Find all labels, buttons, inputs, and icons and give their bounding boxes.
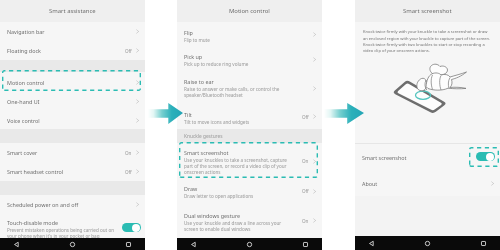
button[interactable]: Home [69, 241, 76, 248]
staticText: Flip to mute [184, 37, 288, 43]
staticText: Pick up [184, 53, 203, 60]
button[interactable]: One-hand UI [0, 92, 145, 111]
staticText: Floating dock [7, 47, 125, 54]
button[interactable]: Recents [480, 240, 487, 247]
staticText: On [125, 150, 132, 156]
staticText: Smart screenshot [184, 149, 229, 156]
button[interactable]: Pick up [177, 47, 322, 72]
button[interactable]: Scheduled power on and off [0, 195, 145, 214]
button[interactable]: Recents [125, 241, 132, 248]
staticText: Draw [184, 185, 198, 192]
staticText: Raise to answer or make calls, or contro… [184, 86, 288, 98]
staticText: Tilt [184, 111, 192, 118]
button[interactable]: Floating dock [0, 41, 145, 60]
staticText: Voice control [7, 117, 134, 124]
staticText: Use your knuckles to take a screenshot, … [184, 157, 288, 175]
staticText: On [302, 158, 309, 164]
button[interactable]: Voice control [0, 111, 145, 129]
staticText: Knock twice firmly with your knuckle to … [363, 29, 493, 53]
staticText: Use your knuckle and draw a line across … [184, 220, 288, 232]
button[interactable]: Smart screenshot [177, 143, 322, 179]
button[interactable]: Motion control [0, 72, 145, 92]
staticText: Off [125, 169, 132, 175]
staticText: Smart screenshot [362, 154, 496, 161]
button[interactable]: Tilt [177, 104, 322, 129]
button[interactable]: Draw [177, 179, 322, 203]
staticText: Off [125, 48, 132, 54]
staticText: One-hand UI [7, 98, 134, 105]
staticText: Raise to ear [184, 78, 214, 85]
button[interactable]: Touch-disable mode [0, 214, 145, 238]
staticText: Dual windows gesture [184, 212, 241, 219]
staticText: Off [302, 114, 309, 120]
button[interactable]: Toggle [122, 223, 141, 232]
button[interactable]: Back [13, 241, 20, 248]
staticText: Tilt to move icons and widgets [184, 119, 288, 125]
button[interactable]: Navigation bar [0, 22, 145, 41]
button[interactable]: Toggle [476, 152, 495, 161]
staticText: Draw letter to open applications [184, 193, 288, 199]
button[interactable]: Back [368, 240, 375, 247]
button[interactable]: Raise to ear [177, 72, 322, 104]
button[interactable]: Back [190, 241, 197, 248]
staticText: Scheduled power on and off [7, 201, 134, 208]
staticText: Smart assistance [49, 7, 96, 15]
button[interactable]: About [355, 170, 500, 196]
staticText: Smart cover [7, 149, 125, 156]
button[interactable]: Dual windows gesture [177, 203, 322, 238]
staticText: Off [302, 188, 309, 194]
button[interactable]: Smart cover [0, 143, 145, 162]
staticText: Touch-disable mode [7, 219, 58, 226]
button[interactable]: Smart headset control [0, 162, 145, 181]
button[interactable]: Recents [302, 241, 309, 248]
staticText: Motion control [229, 7, 270, 15]
staticText: Prevent mistaken operations being carrie… [7, 227, 122, 238]
staticText: Flip [184, 29, 193, 36]
staticText: Smart headset control [7, 168, 125, 175]
staticText: Smart screenshot [403, 7, 452, 15]
button[interactable]: Flip [177, 22, 322, 47]
staticText: On [302, 218, 309, 224]
staticText: Motion control [7, 79, 134, 86]
button[interactable]: Smart screenshot [355, 144, 500, 170]
staticText: About [362, 180, 489, 187]
button[interactable]: Home [246, 241, 253, 248]
button[interactable]: Home [424, 240, 431, 247]
staticText: Pick up to reduce ring volume [184, 61, 288, 67]
staticText: Navigation bar [7, 28, 134, 35]
staticText: Knuckle gestures [184, 133, 223, 140]
